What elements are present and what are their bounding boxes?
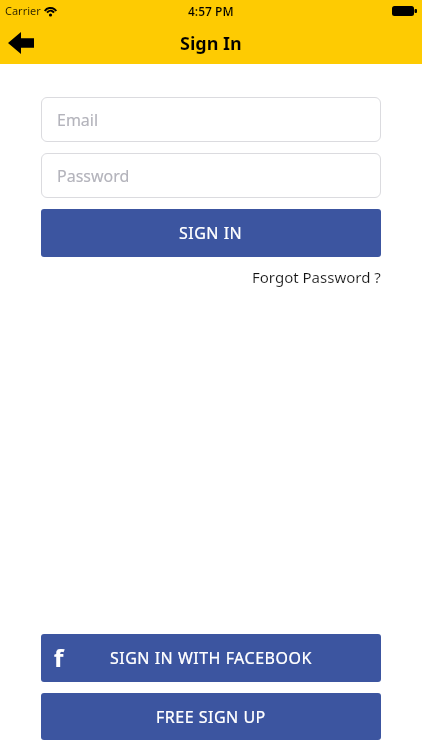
button[interactable]: Email xyxy=(41,97,381,142)
button[interactable]: SIGN IN xyxy=(41,209,381,257)
staticText: 4:57 PM xyxy=(188,3,234,19)
staticText: Carrier xyxy=(5,3,41,18)
staticText: Password xyxy=(57,165,130,187)
staticText: SIGN IN xyxy=(179,222,243,244)
button[interactable]: FREE SIGN UP xyxy=(41,693,381,740)
staticText: SIGN IN WITH FACEBOOK xyxy=(110,647,312,669)
button[interactable]: Password xyxy=(41,153,381,198)
button[interactable] xyxy=(2,26,40,60)
staticText: f xyxy=(54,641,64,674)
staticText: Sign In xyxy=(180,31,242,56)
staticText: Email xyxy=(57,109,99,131)
button[interactable]: f xyxy=(41,634,381,682)
button[interactable]: Forgot Password ? xyxy=(252,267,381,287)
staticText: FREE SIGN UP xyxy=(156,706,266,728)
